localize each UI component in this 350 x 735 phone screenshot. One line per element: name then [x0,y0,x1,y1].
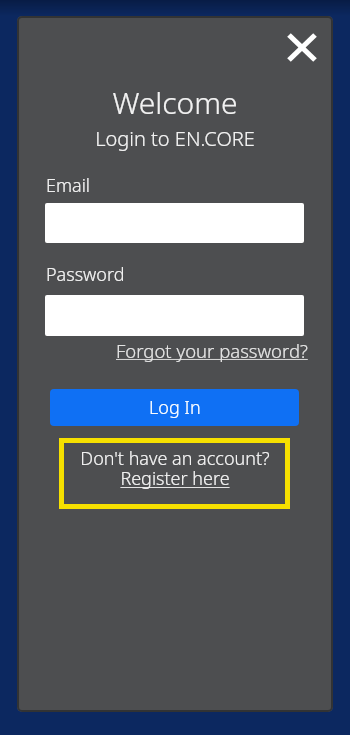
staticText: Welcome [0,82,350,123]
staticText: Login to EN.CORE [0,125,350,152]
button[interactable]: Log In [50,389,299,426]
button[interactable] [282,27,322,67]
button[interactable] [59,438,290,509]
staticText: Email [46,173,91,198]
staticText: Log In [149,395,201,420]
staticText: Forgot your password? [116,338,308,363]
button[interactable]: Forgot your password? [116,338,308,363]
staticText: Register here [0,466,350,491]
staticText: Don't have an account? [0,446,350,471]
staticText: Password [46,262,125,287]
